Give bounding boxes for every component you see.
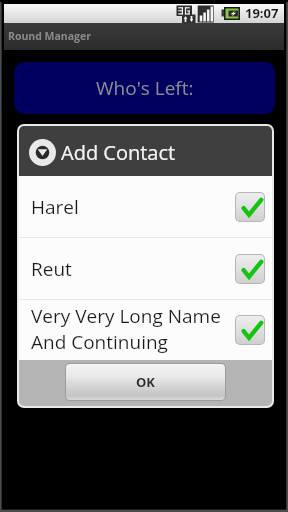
staticText: Reut: [31, 256, 72, 282]
button[interactable]: OK: [66, 364, 225, 400]
staticText: Add Contact: [61, 139, 176, 166]
staticText: Very Very Long Name: [31, 303, 221, 329]
button[interactable]: Selected: [236, 193, 264, 221]
staticText: And Continuing: [31, 329, 168, 355]
staticText: Who's Left:: [96, 75, 194, 101]
staticText: Harel: [31, 194, 79, 220]
staticText: 19:07: [245, 4, 279, 22]
staticText: OK: [136, 373, 155, 391]
button[interactable]: Harel: [19, 176, 272, 237]
button[interactable]: Who's Left:: [14, 62, 275, 114]
button[interactable]: Reut: [19, 238, 272, 299]
button[interactable]: Add Contact: [19, 126, 272, 176]
staticText: Round Manager: [8, 29, 91, 43]
button[interactable]: Very Very Long Name: [19, 300, 272, 360]
button[interactable]: Selected: [236, 316, 264, 344]
button[interactable]: Selected: [236, 255, 264, 283]
